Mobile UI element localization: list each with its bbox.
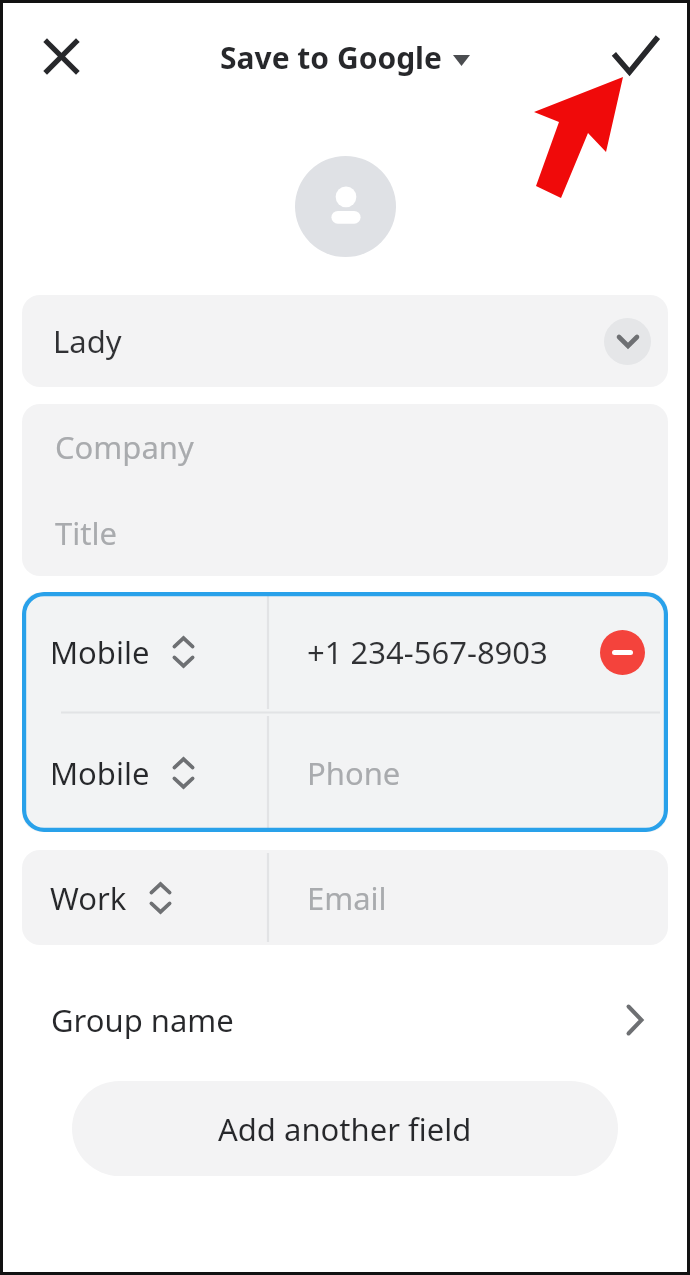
button[interactable]: Save [604, 25, 666, 87]
button[interactable]: Email [271, 850, 668, 945]
button[interactable]: Expand name [604, 318, 651, 365]
staticText: Mobile [50, 752, 150, 794]
button[interactable]: Group name [22, 981, 668, 1059]
button[interactable]: Mobile [22, 713, 250, 832]
button[interactable]: Title [22, 490, 668, 576]
staticText: Company [55, 426, 194, 468]
button[interactable]: Company [22, 404, 668, 490]
staticText: Work [50, 877, 127, 919]
button[interactable]: Lady [22, 295, 668, 387]
staticText: +1 234-567-8903 [307, 631, 548, 673]
button[interactable]: +1 234-567-8903 [271, 592, 668, 712]
button[interactable]: Mobile [22, 592, 250, 712]
staticText: Lady [53, 320, 122, 362]
button[interactable]: Remove phone number [600, 630, 645, 675]
button[interactable]: Phone [271, 713, 668, 832]
button[interactable]: Work [22, 850, 250, 945]
button[interactable]: Add another field [72, 1081, 618, 1176]
staticText: Mobile [50, 631, 150, 673]
staticText: Title [55, 512, 117, 554]
staticText: Phone [307, 752, 401, 794]
staticText: Add another field [218, 1108, 472, 1150]
button[interactable]: Save to Google [214, 33, 476, 82]
button[interactable]: Close [32, 27, 90, 85]
staticText: Save to Google [220, 37, 442, 78]
button[interactable]: Change contact photo [295, 156, 396, 257]
staticText: Group name [51, 999, 234, 1041]
staticText: Email [307, 877, 387, 919]
